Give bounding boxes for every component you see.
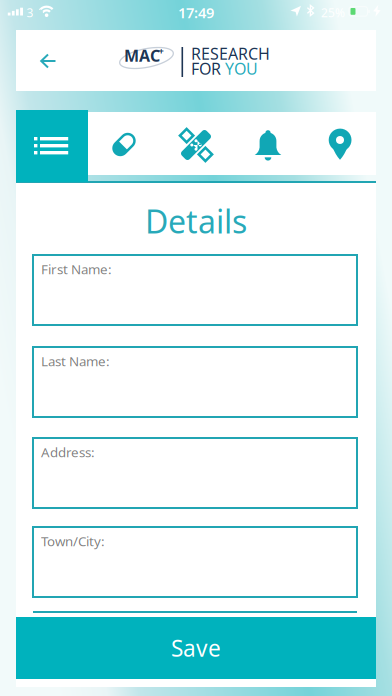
staticText: Details bbox=[145, 200, 247, 242]
staticText: Address: bbox=[41, 443, 95, 461]
staticText: + bbox=[158, 45, 163, 57]
button[interactable]: Medication bbox=[88, 110, 160, 175]
staticText: RESEARCH bbox=[191, 43, 270, 64]
staticText: FOR bbox=[191, 58, 221, 79]
staticText: 17:49 bbox=[178, 3, 214, 22]
staticText: Last Name: bbox=[41, 352, 110, 370]
staticText: Town/City: bbox=[41, 532, 105, 550]
button[interactable]: Save bbox=[16, 617, 376, 679]
staticText: YOU bbox=[225, 58, 258, 79]
staticText: Save bbox=[171, 633, 221, 663]
button[interactable]: Town/City: bbox=[33, 527, 357, 597]
staticText: 3 bbox=[26, 4, 33, 20]
button[interactable]: Location bbox=[304, 110, 376, 175]
button[interactable]: Treatment bbox=[160, 110, 232, 175]
button[interactable]: Last Name: bbox=[33, 347, 357, 417]
button[interactable]: First Name: bbox=[33, 255, 357, 325]
staticText: First Name: bbox=[41, 260, 112, 278]
staticText: 25% bbox=[321, 4, 345, 20]
button[interactable]: Notifications bbox=[232, 110, 304, 175]
staticText: MAC bbox=[124, 45, 160, 66]
button[interactable]: Address: bbox=[33, 438, 357, 508]
button[interactable]: Details bbox=[16, 110, 88, 182]
button[interactable]: Back bbox=[30, 43, 66, 79]
